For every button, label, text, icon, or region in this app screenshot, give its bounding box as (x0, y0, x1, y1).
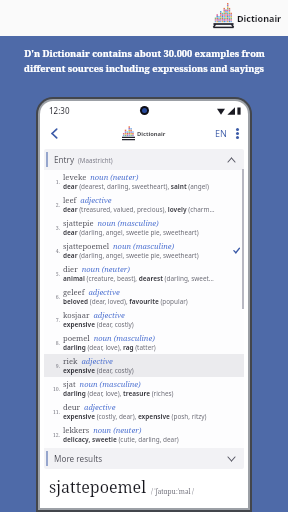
staticText: animal (creature, beast), dearest (darli… (63, 274, 214, 283)
staticText: lekkers noun (neuter) (63, 425, 142, 435)
staticText: 10. (48, 385, 60, 392)
staticText: kosjaar adjective (63, 310, 125, 320)
staticText: sjattepie noun (masculine) (63, 218, 159, 228)
staticText: poemel noun (masculine) (63, 333, 155, 343)
staticText: 7. (48, 316, 60, 323)
staticText: D'n Dictionair contains about 30.000 exa… (24, 47, 265, 60)
staticText: dier noun (neuter) (63, 264, 130, 274)
staticText: dear (darling, angel, sweetie pie, sweet… (63, 251, 199, 260)
button[interactable]: 9. (44, 354, 244, 377)
button[interactable]: 11. (44, 400, 244, 423)
button[interactable]: 6. (44, 285, 244, 308)
staticText: sjattepoemel (49, 476, 147, 498)
staticText: Dictionair (237, 12, 282, 24)
staticText: Entry (54, 154, 75, 165)
button[interactable]: 12. (44, 423, 244, 446)
staticText: 2. (48, 201, 60, 208)
staticText: 8. (48, 339, 60, 346)
button[interactable]: 2. (44, 193, 244, 216)
staticText: 4. (48, 247, 60, 254)
staticText: sjat noun (masculine) (63, 379, 141, 389)
staticText: leef adjective (63, 195, 112, 205)
button[interactable]: EN (215, 127, 227, 139)
staticText: More results (54, 453, 103, 464)
staticText: darling (dear, love), treasure (riches) (63, 389, 174, 398)
staticText: 12. (48, 431, 60, 438)
button[interactable]: 7. (44, 308, 244, 331)
button[interactable]: More options (229, 125, 245, 141)
button[interactable]: 8. (44, 331, 244, 354)
button[interactable]: 3. (44, 216, 244, 239)
staticText: dear (dearest, darling, sweetheart), sai… (63, 182, 209, 191)
button[interactable]: Dictionair logo (213, 8, 282, 28)
staticText: leveke noun (neuter) (63, 172, 139, 182)
staticText: expensive (dear, costly) (63, 366, 134, 375)
staticText: geleef adjective (63, 287, 120, 297)
staticText: dear (darling, angel, sweetie pie, sweet… (63, 228, 199, 237)
button[interactable]: 5. (44, 262, 244, 285)
staticText: 9. (48, 362, 60, 369)
staticText: dear (treasured, valued, precious), love… (63, 205, 215, 214)
staticText: darling (dear, love), rag (tatter) (63, 343, 156, 352)
button[interactable]: More results (44, 448, 244, 469)
staticText: delicacy, sweetie (cutie, darling, dear) (63, 435, 179, 444)
staticText: 6. (48, 293, 60, 300)
button[interactable]: 1. (44, 170, 244, 193)
staticText: sjattepoemel noun (masculine) (63, 241, 175, 251)
staticText: 5. (48, 270, 60, 277)
staticText: / ˈʃatɑpuːˈməl / (151, 487, 194, 496)
button[interactable]: 10. (44, 377, 244, 400)
staticText: different sources including expressions … (24, 62, 264, 75)
staticText: 12:30 (49, 105, 70, 116)
staticText: deur adjective (63, 402, 116, 412)
staticText: Dictionair (137, 130, 166, 138)
staticText: expensive (costly, dear), expensive (pos… (63, 412, 207, 421)
staticText: expensive (dear, costly) (63, 320, 134, 329)
staticText: beloved (dear, loved), favourite (popula… (63, 297, 188, 306)
staticText: 1. (48, 178, 60, 185)
button[interactable]: Entry (44, 149, 244, 170)
staticText: 3. (48, 224, 60, 231)
button[interactable]: 4. (44, 239, 244, 262)
button[interactable]: Dictionair (122, 127, 166, 140)
staticText: (Maastricht) (78, 156, 113, 164)
staticText: 11. (48, 408, 60, 415)
staticText: riek adjective (63, 356, 113, 366)
button[interactable]: Back (43, 122, 65, 144)
